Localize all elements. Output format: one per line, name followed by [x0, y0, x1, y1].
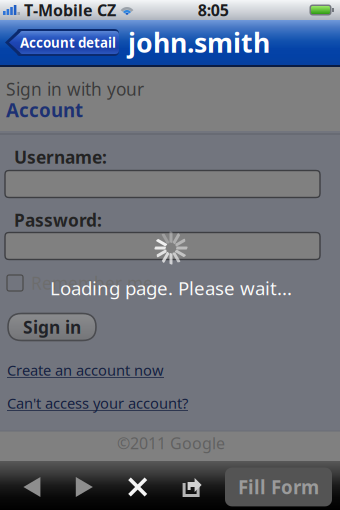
button[interactable]: Fill Form — [225, 468, 332, 506]
button[interactable]: Account — [6, 98, 83, 122]
staticText: Loading page. Please wait... — [50, 276, 292, 300]
button[interactable]: Stop — [116, 466, 159, 507]
staticText: Password: — [14, 208, 102, 231]
staticText: Can't access your account? — [7, 393, 188, 413]
staticText: Username: — [14, 145, 107, 168]
staticText: 8:05 — [198, 0, 229, 21]
staticText: ©2011 Google — [117, 432, 225, 454]
staticText: Remember me — [31, 271, 153, 294]
button[interactable]: Sign in — [8, 313, 96, 340]
button[interactable]: Back — [11, 467, 52, 507]
staticText: Sign in with your — [6, 77, 144, 100]
staticText: T-Mobile CZ — [24, 0, 116, 21]
button[interactable]: Can't access your account? — [7, 393, 188, 413]
staticText: Fill Form — [238, 475, 319, 499]
staticText: Sign in — [23, 315, 81, 338]
button[interactable]: Account detail — [5, 29, 119, 56]
staticText: Create an account now — [7, 360, 164, 380]
button[interactable]: Create an account now — [7, 360, 164, 380]
button[interactable]: Share — [171, 467, 214, 507]
staticText: john.smith — [128, 25, 270, 60]
staticText: Account detail — [20, 34, 116, 51]
staticText: Account — [6, 98, 83, 122]
button[interactable]: Forward — [64, 467, 105, 507]
